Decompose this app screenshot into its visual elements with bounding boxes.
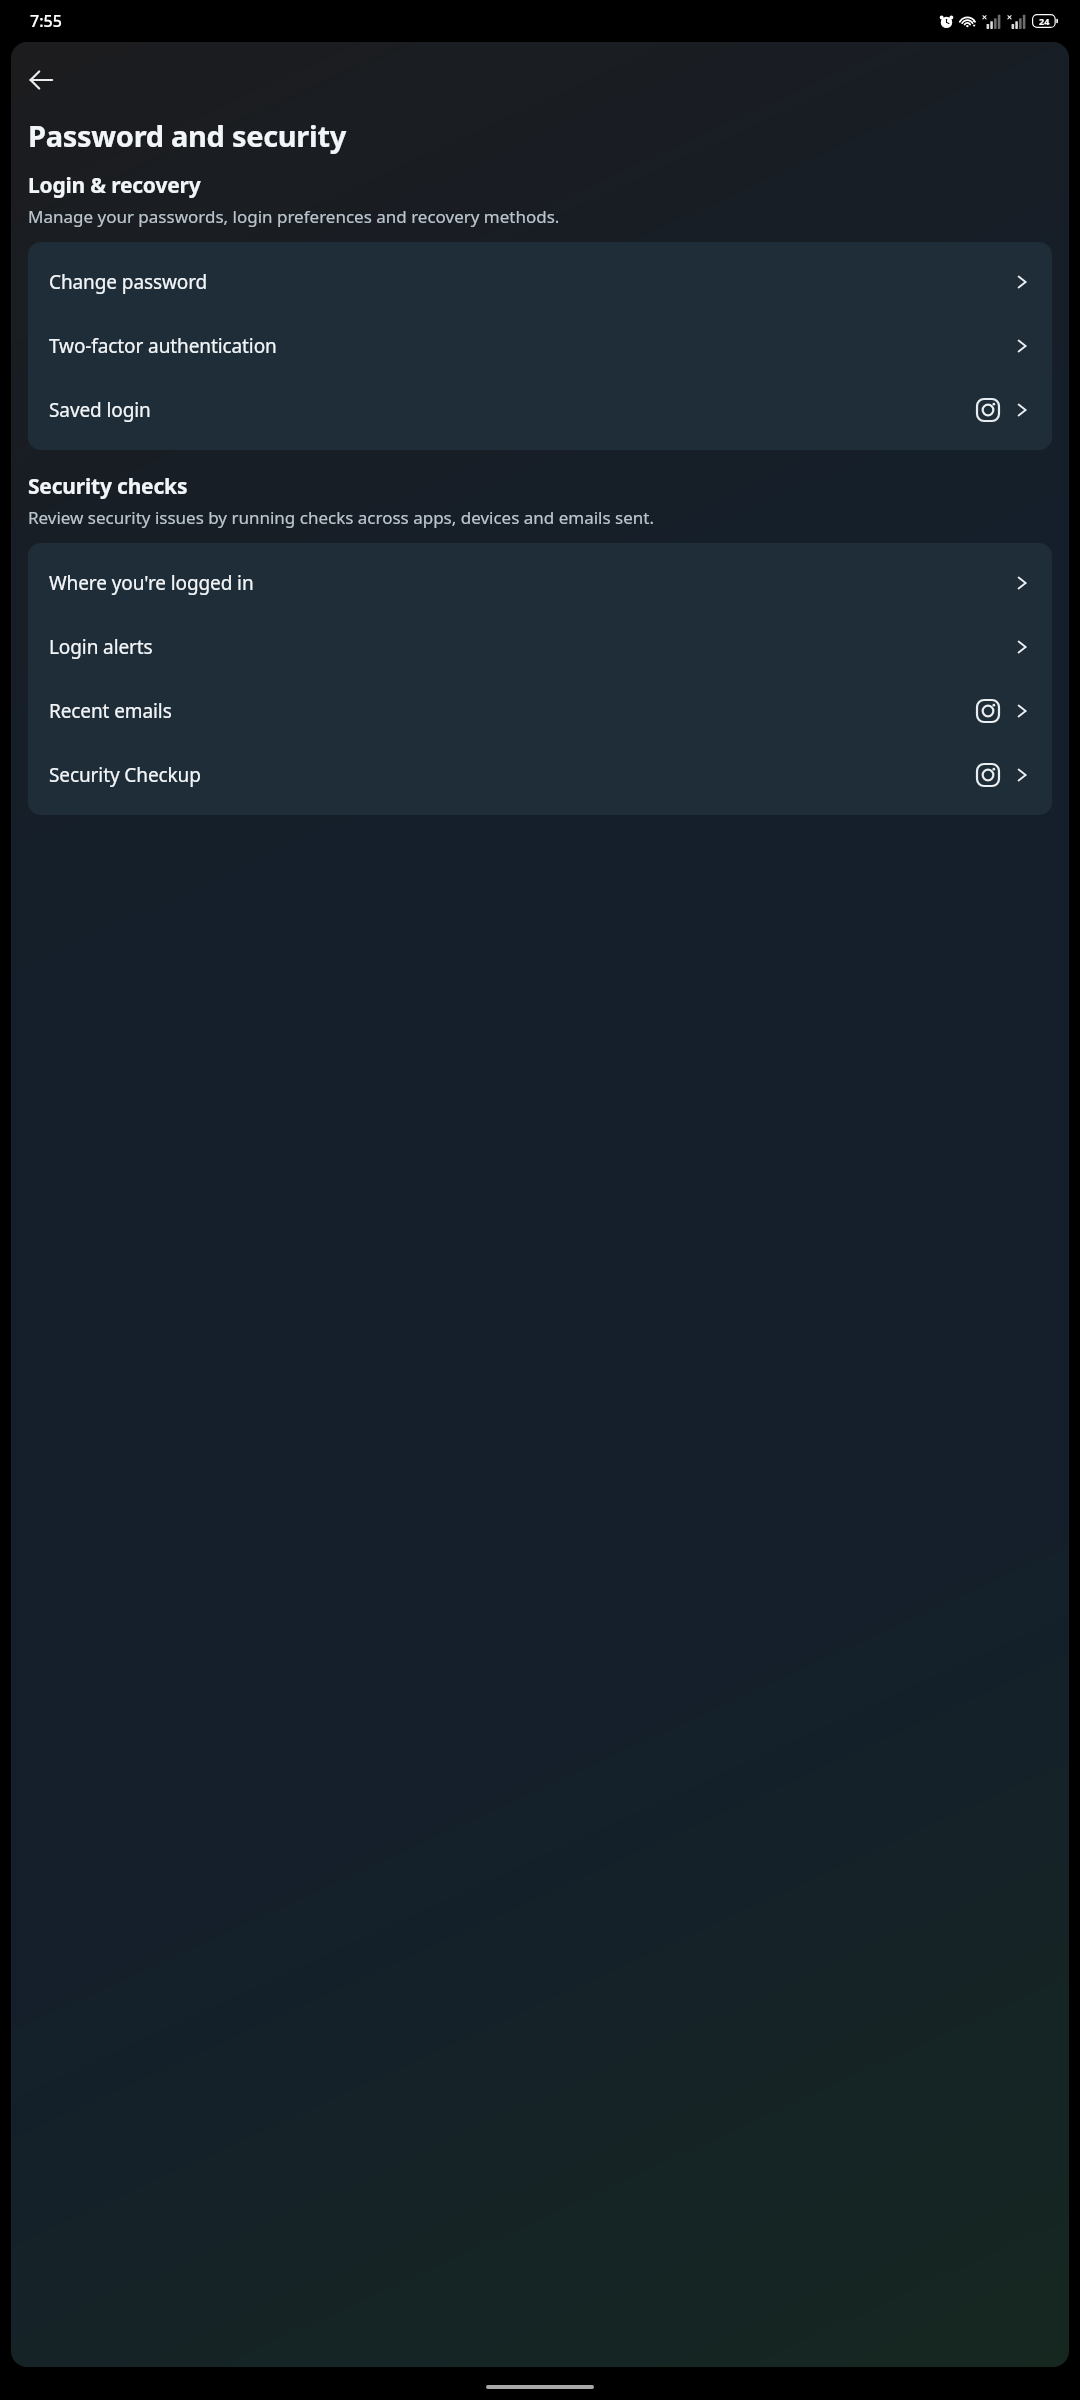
staticText: Change password — [49, 269, 1012, 295]
other: Instagram — [975, 397, 1001, 423]
staticText: Password and security — [28, 116, 346, 155]
staticText: Two-factor authentication — [49, 333, 1012, 359]
button[interactable]: Change password — [28, 250, 1052, 314]
staticText: 24 — [1039, 15, 1050, 27]
other: Instagram — [975, 698, 1001, 724]
staticText: Where you're logged in — [49, 570, 1012, 596]
button[interactable]: Saved login — [28, 378, 1052, 442]
staticText: Saved login — [49, 397, 975, 423]
button[interactable]: Where you're logged in — [28, 551, 1052, 615]
button[interactable]: Recent emails — [28, 679, 1052, 743]
other: Instagram — [975, 762, 1001, 788]
staticText: Security checks — [28, 472, 188, 501]
staticText: Login alerts — [49, 634, 1012, 660]
staticText: Recent emails — [49, 698, 975, 724]
staticText: Manage your passwords, login preferences… — [28, 205, 560, 228]
staticText: Login & recovery — [28, 171, 201, 200]
button[interactable]: Login alerts — [28, 615, 1052, 679]
button[interactable]: Two-factor authentication — [28, 314, 1052, 378]
button[interactable]: Security Checkup — [28, 743, 1052, 807]
staticText: Security Checkup — [49, 762, 975, 788]
button[interactable]: Back — [17, 56, 65, 104]
staticText: 7:55 — [30, 10, 62, 32]
staticText: Review security issues by running checks… — [28, 506, 654, 529]
